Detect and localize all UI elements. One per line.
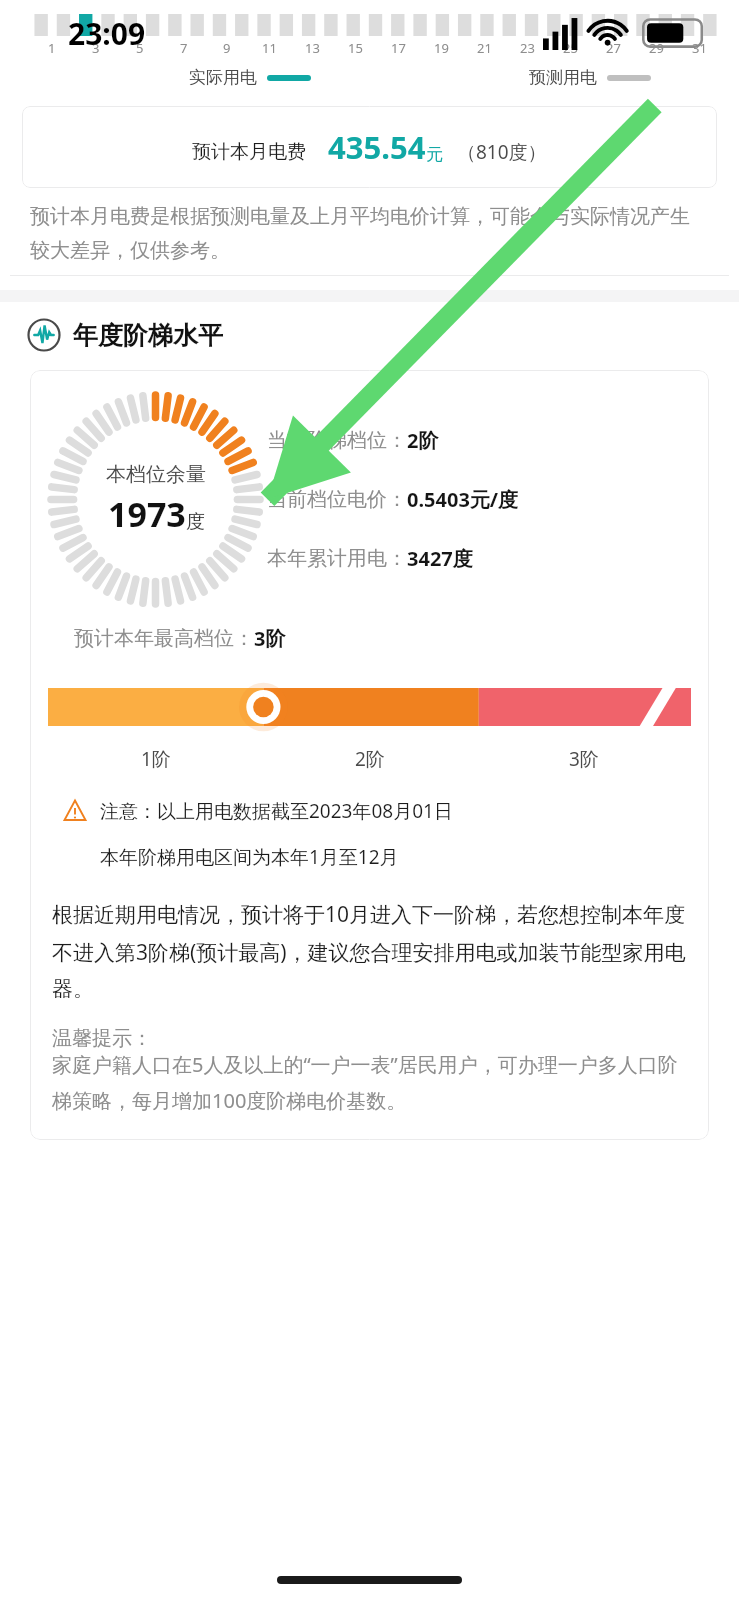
staticText: （810度）: [457, 139, 547, 165]
staticText: 435.54: [328, 126, 426, 168]
staticText: 当前阶梯档位：: [267, 428, 407, 453]
staticText: 19: [434, 39, 449, 57]
staticText: 度: [186, 510, 205, 534]
staticText: 23: [520, 39, 535, 57]
button[interactable]: 预计本月电费: [22, 106, 717, 188]
staticText: 3阶: [569, 746, 599, 772]
staticText: 27: [606, 39, 621, 57]
staticText: 1阶: [141, 746, 171, 772]
staticText: 1973: [108, 491, 186, 537]
staticText: 11: [262, 39, 277, 57]
button[interactable]: 用电趋势: [27, 318, 712, 352]
staticText: 年度阶梯水平: [73, 320, 223, 351]
staticText: 温馨提示：: [52, 1026, 152, 1051]
staticText: 9: [223, 39, 231, 57]
staticText: 3427度: [407, 545, 473, 572]
staticText: 2阶: [355, 746, 385, 772]
staticText: 3: [92, 39, 100, 57]
staticText: 实际用电: [189, 67, 257, 88]
staticText: 1: [48, 39, 56, 57]
staticText: 本档位余量: [106, 462, 206, 487]
staticText: 预测用电: [529, 67, 597, 88]
staticText: 5: [136, 39, 144, 57]
staticText: 本年累计用电：: [267, 546, 407, 571]
staticText: 预计本月电费是根据预测电量及上月平均电价计算，可能会与实际情况产生较大差异，仅供…: [30, 204, 709, 263]
staticText: 23:09: [68, 13, 146, 54]
staticText: 31: [692, 39, 707, 57]
staticText: 21: [477, 39, 492, 57]
staticText: 本年阶梯用电区间为本年1月至12月: [100, 844, 399, 870]
other: 用电趋势: [27, 318, 61, 352]
staticText: 注意：以上用电数据截至2023年08月01日: [100, 798, 453, 824]
staticText: 15: [348, 39, 363, 57]
staticText: 元: [426, 144, 443, 165]
staticText: 家庭户籍人口在5人及以上的“一户一表”居民用户，可办理一户多人口阶梯策略，每月增…: [52, 1051, 687, 1114]
staticText: 预计本年最高档位：: [74, 626, 254, 651]
staticText: 2阶: [407, 427, 439, 454]
staticText: 17: [391, 39, 406, 57]
staticText: 25: [563, 39, 578, 57]
staticText: 预计本月电费: [192, 140, 306, 164]
staticText: 0.5403元/度: [407, 486, 519, 513]
staticText: 当前档位电价：: [267, 487, 407, 512]
staticText: 7: [180, 39, 188, 57]
staticText: 根据近期用电情况，预计将于10月进入下一阶梯，若您想控制本年度不进入第3阶梯(预…: [52, 900, 687, 1002]
staticText: 13: [305, 39, 320, 57]
staticText: 29: [649, 39, 664, 57]
staticText: 3阶: [254, 625, 286, 652]
